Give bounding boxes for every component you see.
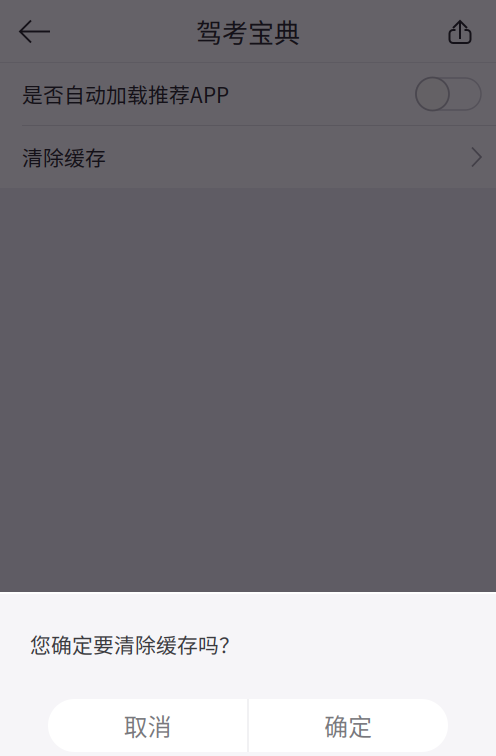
staticText: 您确定要清除缓存吗？ bbox=[30, 629, 240, 659]
staticText: 清除缓存 bbox=[22, 142, 106, 172]
staticText: 是否自动加载推荐APP bbox=[22, 79, 229, 109]
staticText: 确定 bbox=[324, 708, 372, 743]
staticText: 驾考宝典 bbox=[196, 13, 300, 50]
button[interactable]: Share bbox=[438, 9, 482, 53]
button[interactable]: 确定 bbox=[248, 699, 448, 752]
button[interactable]: 清除缓存 bbox=[0, 126, 496, 188]
button[interactable]: Back bbox=[12, 9, 56, 53]
button[interactable]: 取消 bbox=[48, 699, 247, 752]
staticText: 取消 bbox=[124, 708, 172, 743]
button[interactable]: 是否自动加载推荐APP bbox=[0, 63, 496, 125]
